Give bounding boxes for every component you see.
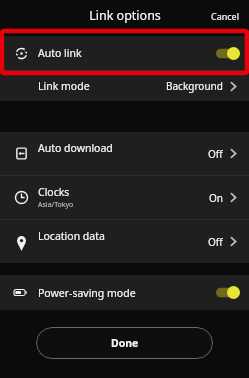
staticText: Clocks [38, 185, 70, 199]
button[interactable]: Link mode [0, 71, 249, 101]
staticText: Link mode [38, 79, 90, 93]
staticText: Off [208, 147, 223, 161]
button[interactable]: Power-saving mode [0, 275, 249, 310]
button[interactable]: Clocks [0, 176, 249, 219]
button[interactable]: Done [36, 327, 213, 359]
staticText: Done [111, 336, 139, 350]
button[interactable]: Location data [0, 220, 249, 263]
button[interactable]: Cancel [202, 4, 249, 28]
staticText: On [209, 191, 223, 205]
staticText: Asia/Tokyo [38, 200, 74, 210]
button[interactable]: Auto link [0, 36, 249, 70]
staticText: Link options [89, 7, 161, 24]
staticText: Background [166, 79, 223, 93]
button[interactable]: Auto download [0, 132, 249, 175]
staticText: Off [208, 235, 223, 249]
staticText: Auto link [38, 46, 82, 60]
staticText: Power-saving mode [38, 286, 136, 300]
staticText: Auto download [38, 141, 113, 155]
staticText: Location data [38, 229, 105, 243]
staticText: Cancel [211, 10, 240, 22]
